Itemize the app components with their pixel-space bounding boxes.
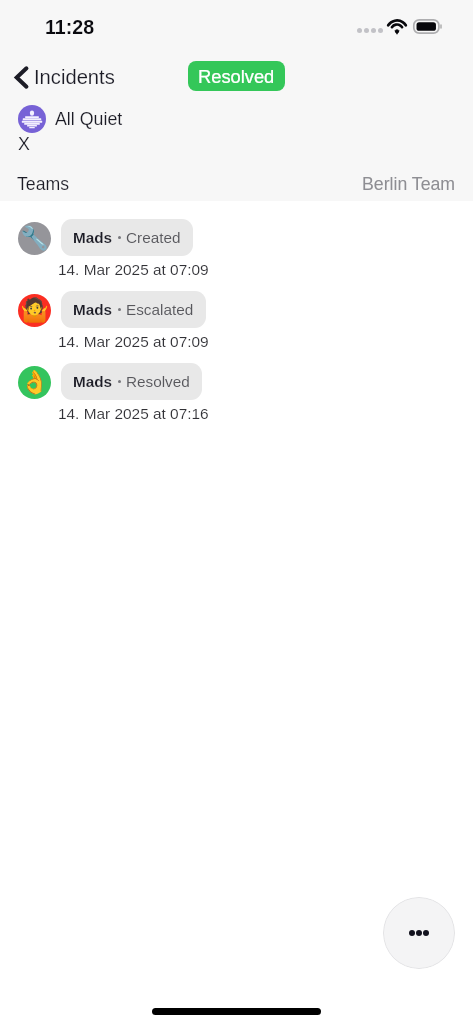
staticText: 🔧 — [20, 225, 49, 252]
staticText: X — [18, 134, 30, 154]
button[interactable]: Resolved — [188, 61, 285, 91]
staticText: Mads — [73, 229, 113, 246]
staticText: All Quiet — [55, 109, 123, 129]
staticText: Berlin Team — [362, 174, 456, 194]
button[interactable] — [18, 105, 46, 133]
staticText: Created — [126, 229, 181, 246]
staticText: 14. Mar 2025 at 07:09 — [58, 261, 209, 278]
button[interactable]: Mads — [61, 363, 202, 400]
staticText: 👌 — [20, 369, 49, 396]
button[interactable]: Incidents — [7, 58, 125, 97]
button[interactable]: Mads — [61, 291, 206, 328]
staticText: Teams — [17, 174, 70, 194]
staticText: Escalated — [126, 301, 194, 318]
button[interactable]: Teams — [0, 166, 473, 201]
staticText: 14. Mar 2025 at 07:09 — [58, 333, 209, 350]
staticText: 14. Mar 2025 at 07:16 — [58, 405, 209, 422]
staticText: Mads — [73, 373, 113, 390]
staticText: 🤷 — [20, 297, 49, 324]
button[interactable]: More options — [383, 897, 455, 969]
staticText: Resolved — [126, 373, 190, 390]
button[interactable]: Mads — [61, 219, 193, 256]
staticText: 11:28 — [45, 16, 95, 38]
staticText: Incidents — [34, 66, 115, 89]
staticText: Resolved — [198, 66, 275, 86]
staticText: Mads — [73, 301, 113, 318]
